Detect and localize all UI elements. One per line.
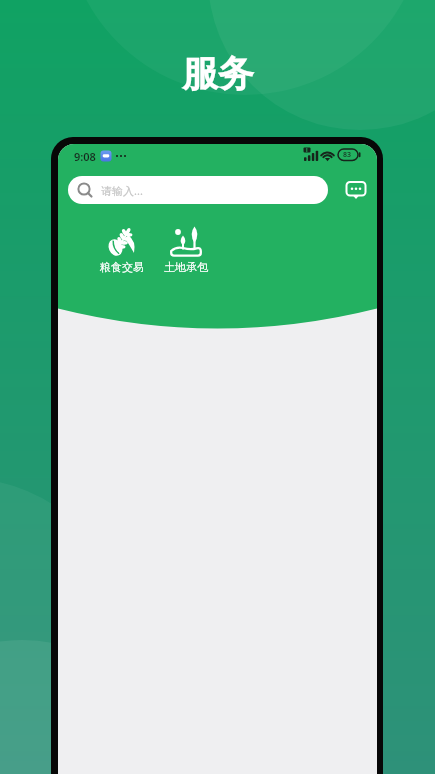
- staticText: 请输入...: [101, 183, 143, 198]
- button[interactable]: 土地承包: [163, 225, 209, 274]
- staticText: 83: [343, 150, 352, 160]
- staticText: 服务: [182, 51, 254, 96]
- staticText: 粮食交易: [100, 260, 144, 274]
- staticText: 9:08: [74, 149, 96, 164]
- button[interactable]: 请输入...: [68, 176, 328, 204]
- button[interactable]: 粮食交易: [99, 225, 145, 274]
- button[interactable]: [344, 178, 368, 202]
- staticText: 土地承包: [164, 260, 208, 274]
